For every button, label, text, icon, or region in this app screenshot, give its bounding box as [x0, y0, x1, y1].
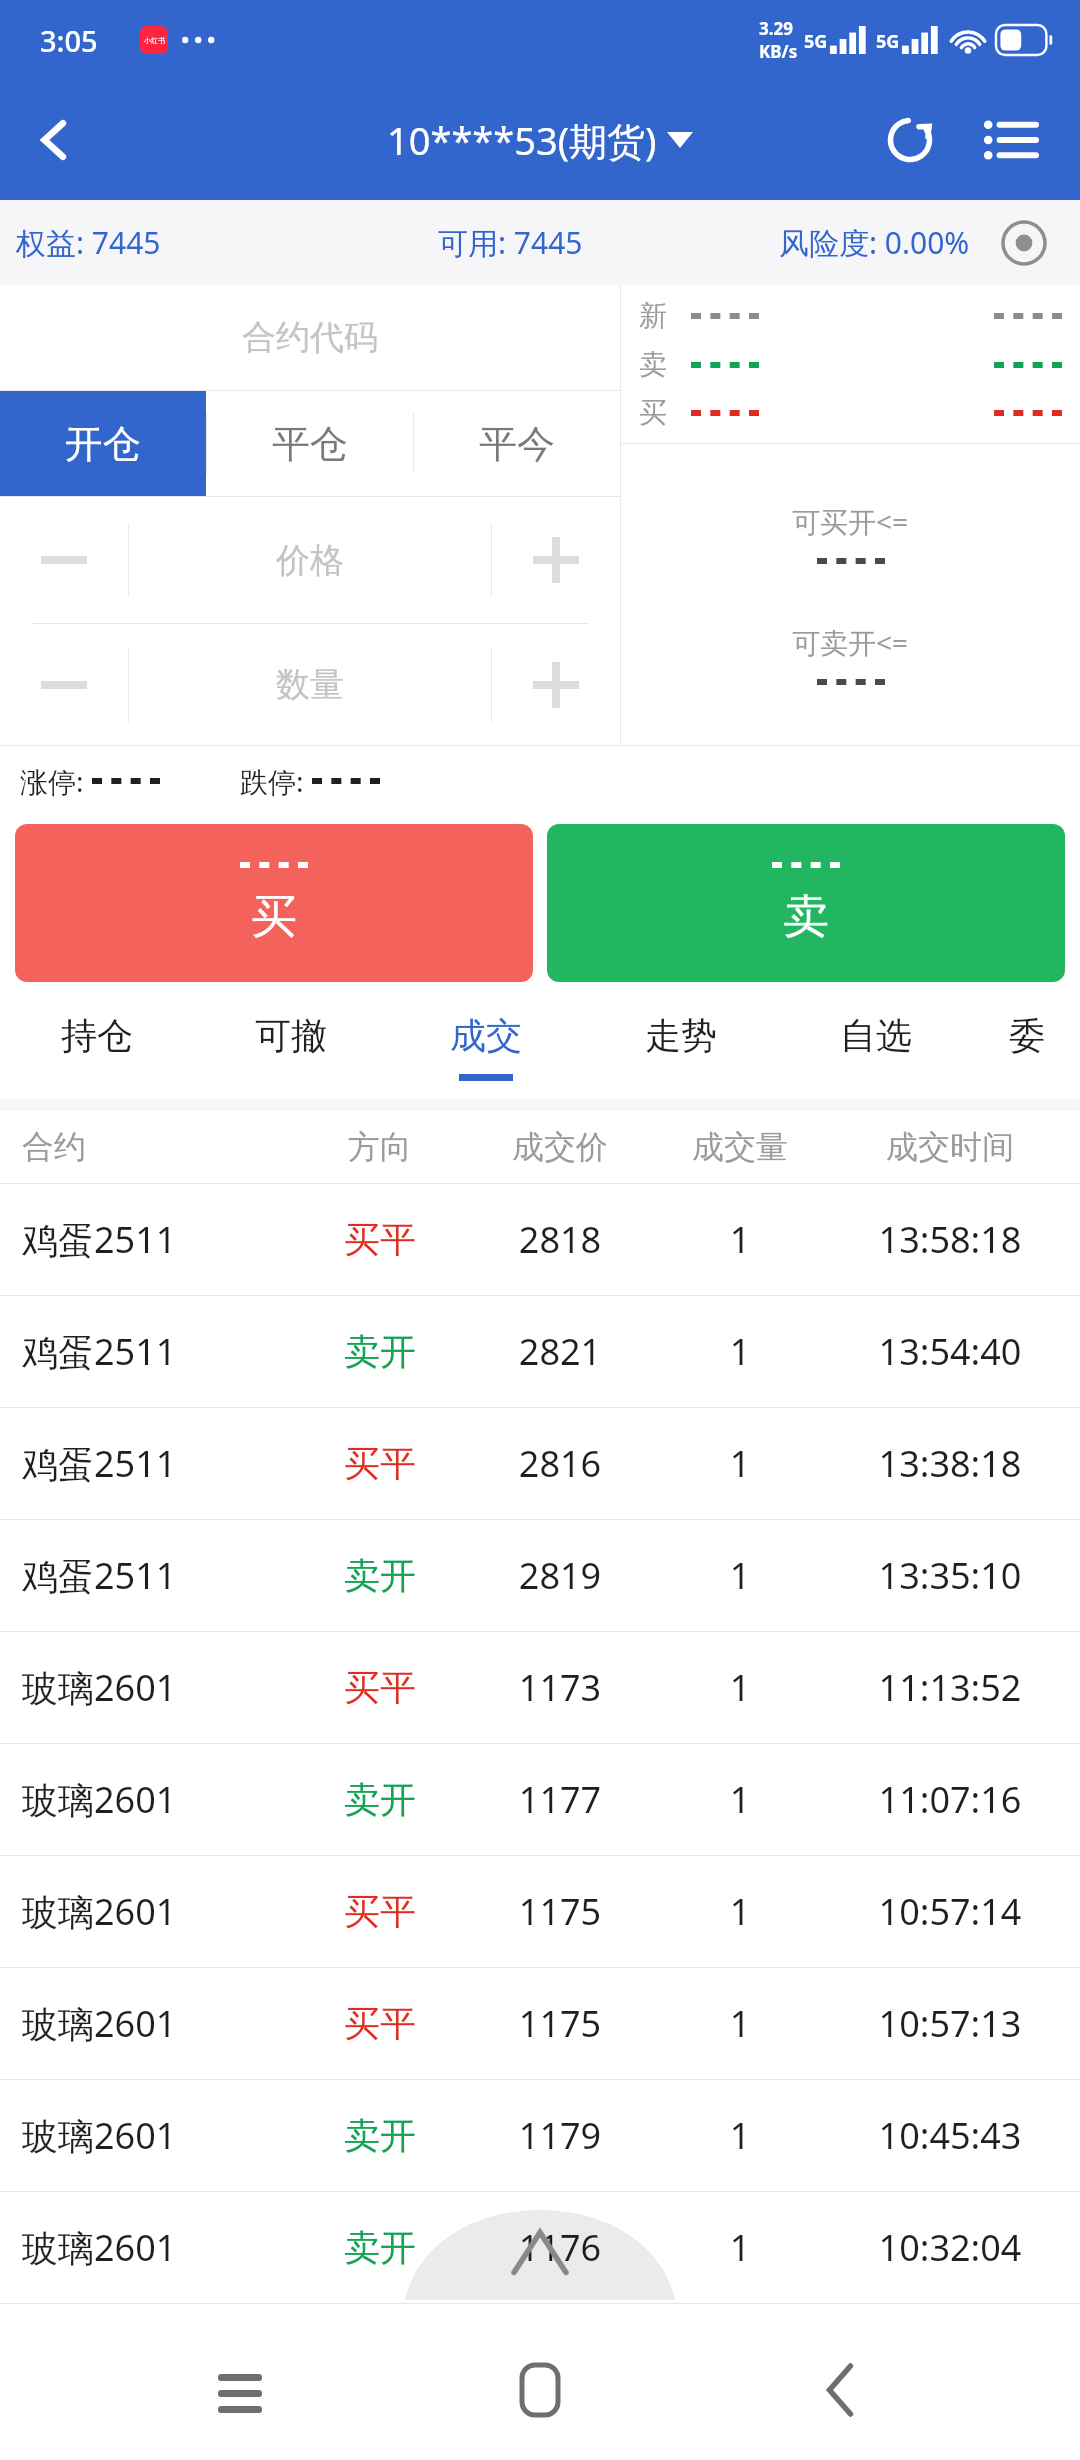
staticText: 1	[660, 1327, 820, 1376]
staticText: 10:45:43	[820, 2111, 1080, 2160]
staticText: 涨停:	[20, 762, 84, 800]
button[interactable]: Increase 数量	[492, 624, 620, 745]
staticText: 1	[660, 2111, 820, 2160]
button[interactable]: 玻璃2601	[0, 1856, 1080, 1967]
button[interactable]: Home	[480, 2330, 600, 2450]
staticText: 鸡蛋2511	[22, 1327, 300, 1376]
button[interactable]: 玻璃2601	[0, 1968, 1080, 2079]
staticText: 10****53(期货)	[387, 114, 657, 166]
button[interactable]: 卖	[547, 824, 1065, 982]
staticText: 13:58:18	[820, 1215, 1080, 1264]
button[interactable]: 10****53(期货)	[387, 114, 693, 166]
staticText: 11:13:52	[820, 1663, 1080, 1712]
staticText: 10:32:04	[820, 2223, 1080, 2272]
button[interactable]: 委	[973, 994, 1080, 1099]
button[interactable]: Menu	[960, 90, 1060, 190]
button[interactable]: 自选	[778, 994, 973, 1099]
staticText: 成交量	[660, 1127, 820, 1167]
staticText: 10:57:13	[820, 1999, 1080, 2048]
staticText: 鸡蛋2511	[22, 1439, 300, 1488]
staticText: 平仓	[272, 420, 348, 468]
button[interactable]: Increase 价格	[492, 497, 620, 623]
staticText: 卖开	[300, 1329, 460, 1374]
staticText: 2819	[460, 1551, 660, 1600]
button[interactable]: Recents	[180, 2330, 300, 2450]
button[interactable]: 买	[15, 824, 533, 982]
staticText: 买平	[300, 2001, 460, 2046]
staticText: 卖	[783, 888, 829, 946]
staticText: KB/s	[759, 40, 798, 63]
button[interactable]: 玻璃2601	[0, 1632, 1080, 1743]
staticText: 数量	[276, 663, 344, 706]
staticText: 玻璃2601	[22, 1887, 300, 1936]
button[interactable]: 数量	[129, 624, 491, 745]
button[interactable]: Back	[780, 2330, 900, 2450]
button[interactable]: Decrease 数量	[0, 624, 128, 745]
button[interactable]: 走势	[583, 994, 778, 1099]
staticText: 卖开	[300, 2113, 460, 2158]
staticText: 买平	[300, 1665, 460, 1710]
button[interactable]: 平今	[414, 391, 620, 496]
button[interactable]: 鸡蛋2511	[0, 1520, 1080, 1631]
button[interactable]: 价格	[129, 497, 491, 623]
button[interactable]: 持仓	[0, 994, 194, 1099]
staticText: 13:35:10	[820, 1551, 1080, 1600]
staticText: 玻璃2601	[22, 1775, 300, 1824]
button[interactable]: 玻璃2601	[0, 2080, 1080, 2191]
staticText: 走势	[645, 1013, 717, 1058]
button[interactable]: Toggle visibility	[988, 207, 1060, 279]
staticText: 买	[639, 395, 667, 430]
staticText: 1175	[460, 1887, 660, 1936]
button[interactable]: Decrease 价格	[0, 497, 128, 623]
staticText: 买平	[300, 1441, 460, 1486]
staticText: 价格	[276, 539, 344, 582]
staticText: 1	[660, 1663, 820, 1712]
button[interactable]: 可撤	[194, 994, 388, 1099]
button[interactable]: Back	[0, 85, 110, 195]
staticText: 1175	[460, 1999, 660, 2048]
staticText: 卖开	[300, 1777, 460, 1822]
staticText: 10:57:14	[820, 1887, 1080, 1936]
staticText: 跌停:	[240, 762, 304, 800]
staticText: 3:05	[40, 21, 98, 60]
button[interactable]: 成交	[388, 994, 583, 1099]
staticText: 成交时间	[820, 1127, 1080, 1167]
button[interactable]: 玻璃2601	[0, 1744, 1080, 1855]
button[interactable]: 鸡蛋2511	[0, 1184, 1080, 1295]
button[interactable]: 开仓	[0, 391, 206, 496]
staticText: 小红书	[144, 36, 165, 45]
staticText: 1	[660, 1551, 820, 1600]
staticText: 成交	[450, 1013, 522, 1058]
staticText: 可买开<=	[792, 502, 909, 540]
staticText: 鸡蛋2511	[22, 1215, 300, 1264]
staticText: 持仓	[61, 1013, 133, 1058]
button[interactable]: 鸡蛋2511	[0, 1408, 1080, 1519]
staticText: 卖	[639, 347, 667, 382]
staticText: 2818	[460, 1215, 660, 1264]
staticText: 5G	[876, 29, 900, 54]
button[interactable]: Refresh	[860, 90, 960, 190]
staticText: 自选	[840, 1013, 912, 1058]
staticText: 买平	[300, 1889, 460, 1934]
staticText: 平今	[479, 420, 555, 468]
staticText: 1	[660, 1215, 820, 1264]
button[interactable]: 平仓	[207, 391, 413, 496]
staticText: 玻璃2601	[22, 1663, 300, 1712]
staticText: 3.29	[759, 17, 793, 40]
staticText: 13:54:40	[820, 1327, 1080, 1376]
button[interactable]: 鸡蛋2511	[0, 1296, 1080, 1407]
staticText: 1	[660, 1439, 820, 1488]
staticText: 卖开	[300, 1553, 460, 1598]
staticText: 1176	[460, 2223, 660, 2272]
staticText: 2821	[460, 1327, 660, 1376]
staticText: 1	[660, 2223, 820, 2272]
button[interactable]: 玻璃2601	[0, 2192, 1080, 2303]
staticText: 1	[660, 1775, 820, 1824]
staticText: 11:07:16	[820, 1775, 1080, 1824]
staticText: 开仓	[65, 420, 141, 468]
staticText: 5G	[804, 29, 828, 54]
staticText: 1179	[460, 2111, 660, 2160]
staticText: 委	[1009, 1013, 1045, 1058]
staticText: 玻璃2601	[22, 1999, 300, 2048]
staticText: 权益: 7445	[16, 222, 161, 263]
